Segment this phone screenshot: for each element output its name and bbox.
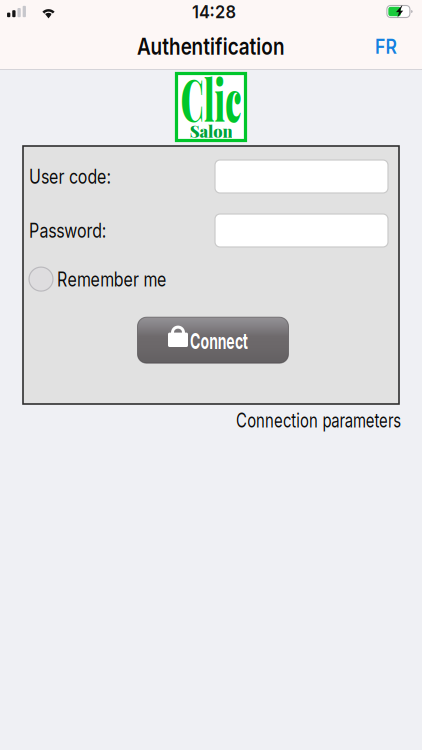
staticText: Connect xyxy=(190,328,278,354)
button[interactable]: Connection parameters xyxy=(236,408,401,432)
staticText: Salon xyxy=(183,116,239,145)
button[interactable]: FR xyxy=(363,24,408,69)
button[interactable]: Remember me xyxy=(28,247,394,291)
staticText: Connection parameters xyxy=(236,408,422,432)
staticText: Password: xyxy=(29,218,126,243)
staticText: Remember me xyxy=(57,267,194,291)
button[interactable]: Connect xyxy=(137,317,288,363)
staticText: 14:28 xyxy=(192,0,242,23)
staticText: Authentification xyxy=(137,33,313,60)
staticText: FR xyxy=(375,34,400,59)
staticText: User code: xyxy=(29,164,132,189)
staticText: Clic xyxy=(143,49,279,145)
